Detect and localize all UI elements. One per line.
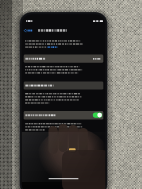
button[interactable]: Photo of a phone showing Battery Health … (0, 0, 142, 189)
